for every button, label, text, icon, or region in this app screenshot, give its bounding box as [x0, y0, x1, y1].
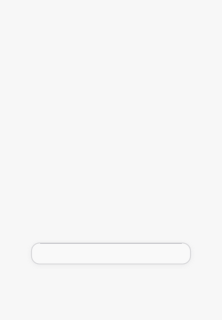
button[interactable]: Message input field: [31, 243, 190, 264]
